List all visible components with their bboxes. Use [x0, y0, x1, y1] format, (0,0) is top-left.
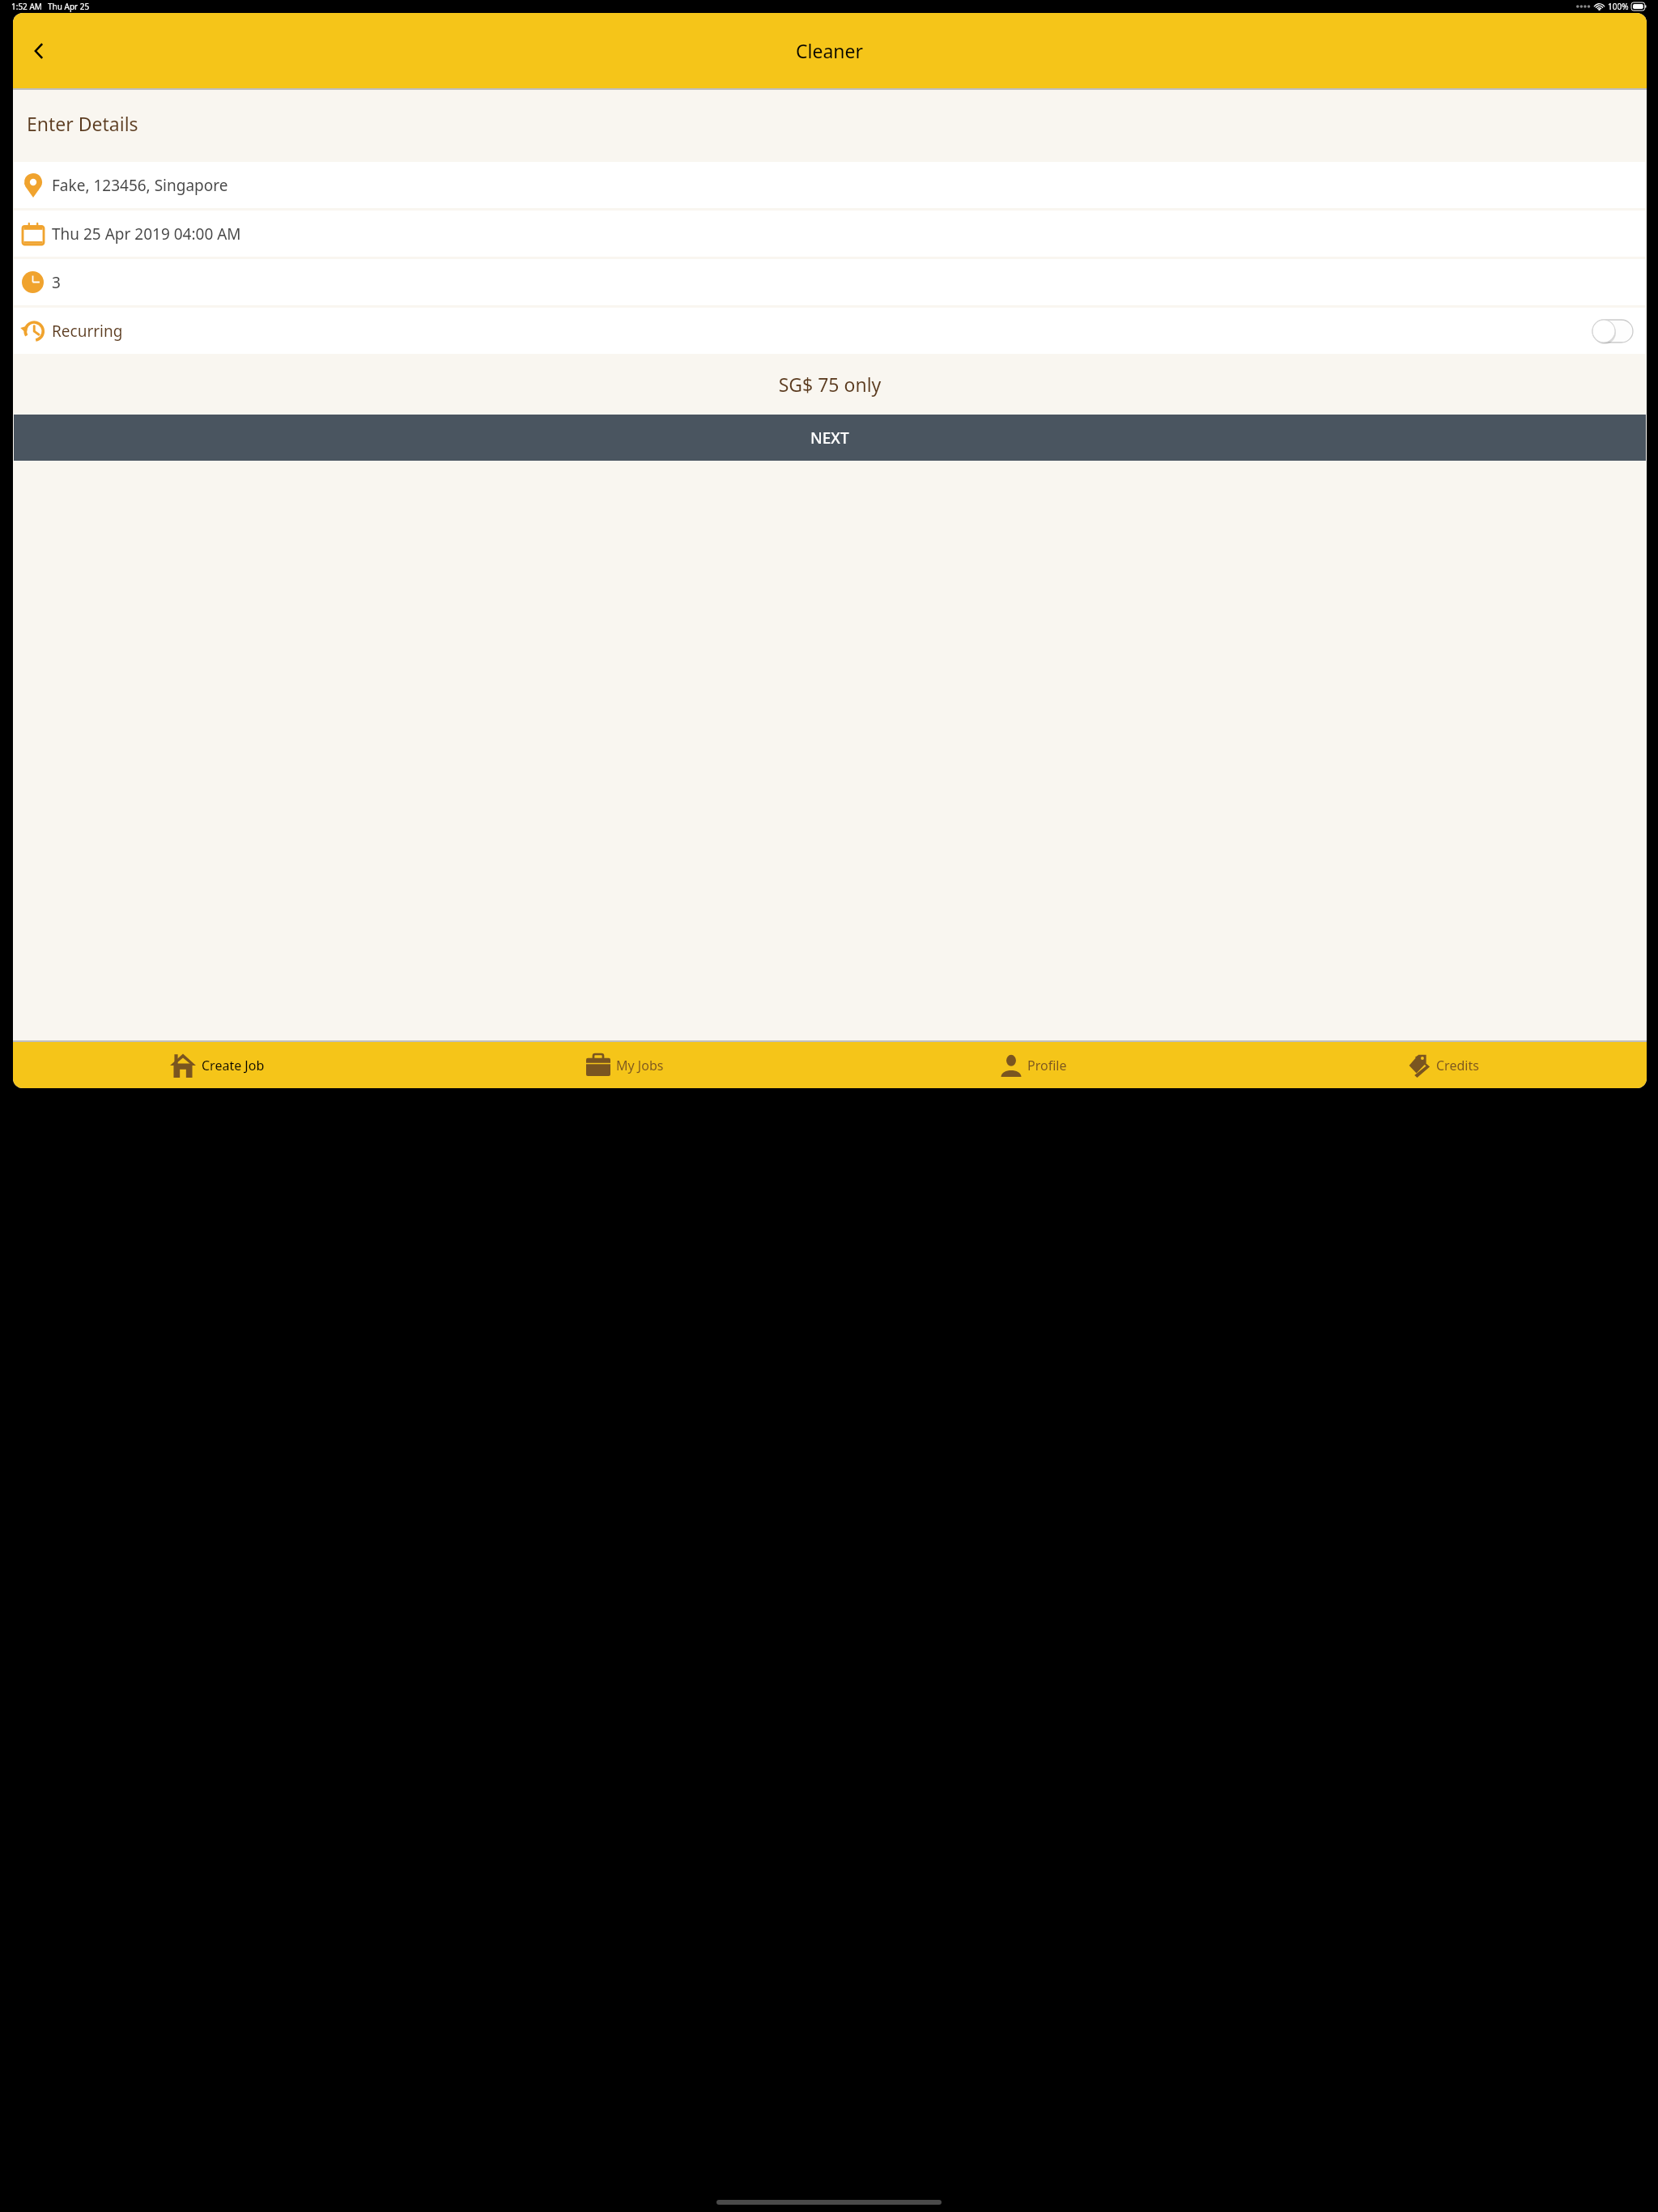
staticText: Recurring — [52, 321, 123, 342]
button[interactable]: Create Job — [13, 1042, 421, 1088]
staticText: Create Job — [202, 1057, 265, 1074]
staticText: Enter Details — [27, 111, 138, 136]
staticText: Credits — [1436, 1057, 1479, 1074]
staticText: My Jobs — [616, 1057, 664, 1074]
button[interactable]: Recurring — [14, 308, 1646, 354]
button[interactable]: NEXT — [14, 415, 1646, 461]
button[interactable]: Back — [18, 30, 60, 72]
staticText: Thu 25 Apr 2019 04:00 AM — [52, 223, 241, 245]
button[interactable]: Recurring toggle — [1592, 320, 1633, 342]
staticText: Fake, 123456, Singapore — [52, 175, 228, 196]
staticText: 1:52 AM — [11, 1, 42, 12]
button[interactable]: Credits — [1238, 1042, 1647, 1088]
staticText: NEXT — [810, 428, 849, 449]
button[interactable]: My Jobs — [421, 1042, 829, 1088]
staticText: Profile — [1027, 1057, 1067, 1074]
staticText: 100% — [1608, 1, 1629, 12]
button[interactable]: Fake, 123456, Singapore — [14, 162, 1646, 208]
button[interactable]: Thu 25 Apr 2019 04:00 AM — [14, 211, 1646, 257]
staticText: SG$ 75 only — [13, 372, 1647, 397]
button[interactable]: Profile — [829, 1042, 1238, 1088]
staticText: Thu Apr 25 — [48, 1, 90, 12]
staticText: 3 — [52, 272, 61, 293]
button[interactable]: 3 — [14, 259, 1646, 305]
staticText: Cleaner — [796, 38, 864, 63]
